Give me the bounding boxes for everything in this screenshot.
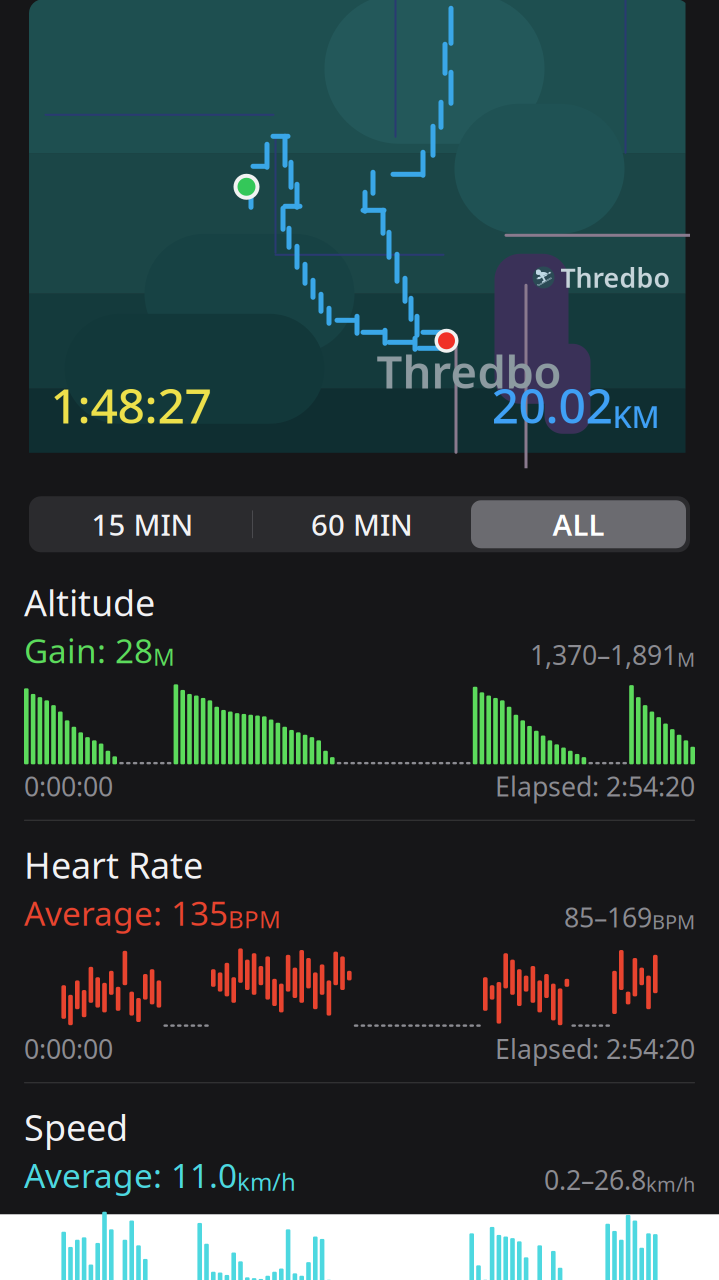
staticText: Heart Rate <box>24 841 203 889</box>
staticText: 1:48:27 <box>50 373 211 437</box>
staticText: Average: 11.0 <box>24 1153 237 1197</box>
button[interactable]: ALL <box>471 500 686 548</box>
button[interactable]: Workout route map <box>29 0 690 468</box>
staticText: km/h <box>646 1171 695 1197</box>
staticText: 15 MIN <box>91 505 193 544</box>
staticText: Speed <box>24 1103 128 1151</box>
staticText: Gain: 28 <box>24 628 153 672</box>
staticText: ⛷ <box>533 268 553 287</box>
staticText: 60 MIN <box>311 505 413 544</box>
staticText: M <box>677 646 695 672</box>
staticText: M <box>153 640 175 672</box>
staticText: Thredbo <box>376 341 561 401</box>
staticText: Thredbo <box>560 260 669 295</box>
staticText: 85–169 <box>564 899 652 935</box>
staticText: ALL <box>552 505 604 544</box>
staticText: Average: 135 <box>24 891 228 935</box>
staticText: 0:00:00 <box>24 768 113 804</box>
staticText: km/h <box>237 1165 296 1197</box>
staticText: 0:00:00 <box>24 1031 113 1066</box>
staticText: BPM <box>228 903 281 935</box>
staticText: Elapsed: 2:54:20 <box>495 768 695 804</box>
button[interactable]: 15 MIN <box>33 496 252 552</box>
staticText: Altitude <box>24 578 155 626</box>
staticText: KM <box>612 396 659 437</box>
staticText: BPM <box>652 908 695 935</box>
staticText: 20.02 <box>491 373 612 437</box>
button[interactable]: 60 MIN <box>253 496 471 552</box>
staticText: Elapsed: 2:54:20 <box>495 1031 695 1066</box>
staticText: 1,370–1,891 <box>530 637 677 672</box>
staticText: 0.2–26.8 <box>544 1162 646 1197</box>
